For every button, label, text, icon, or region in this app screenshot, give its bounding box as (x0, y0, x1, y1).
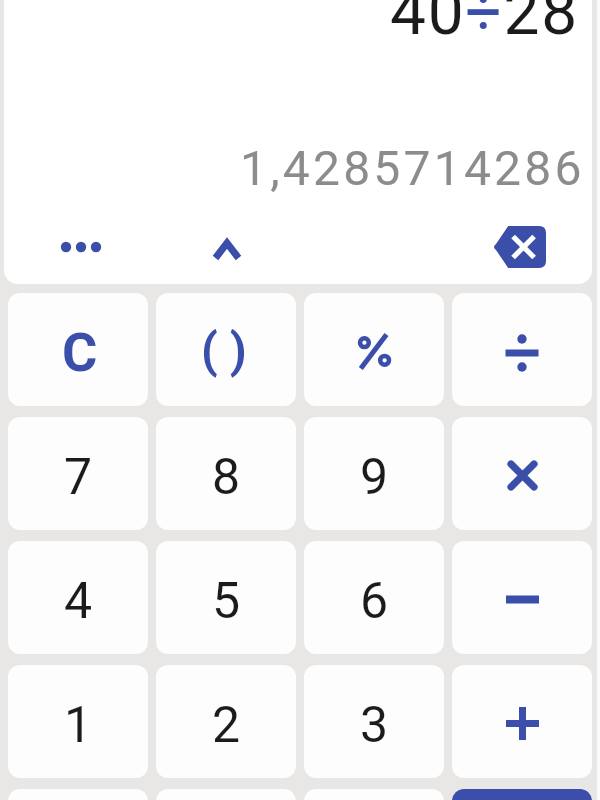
button[interactable] (304, 789, 444, 800)
button[interactable] (8, 789, 148, 800)
button[interactable] (192, 220, 262, 280)
staticText: 5 (212, 572, 241, 631)
staticText: 1,4285714286 (240, 140, 585, 196)
button[interactable] (452, 665, 592, 778)
staticText: 7 (64, 448, 93, 507)
button[interactable]: 1 (8, 665, 148, 778)
button[interactable]: ( ) (156, 293, 296, 406)
button[interactable] (304, 293, 444, 406)
button[interactable]: 4 (8, 541, 148, 654)
staticText: ( ) (201, 322, 247, 378)
staticText: 40÷28 (390, 0, 579, 50)
button[interactable]: 3 (304, 665, 444, 778)
staticText: 1 (64, 696, 93, 755)
staticText: 8 (212, 448, 241, 507)
button[interactable]: 6 (304, 541, 444, 654)
button[interactable]: 2 (156, 665, 296, 778)
staticText: 6 (360, 572, 389, 631)
button[interactable]: 7 (8, 417, 148, 530)
staticText: 9 (360, 448, 389, 507)
staticText: 2 (212, 696, 241, 755)
button[interactable] (452, 789, 592, 800)
button[interactable] (452, 417, 592, 530)
button[interactable]: 5 (156, 541, 296, 654)
button[interactable] (46, 217, 116, 277)
button[interactable]: C (8, 293, 148, 406)
staticText: C (62, 321, 98, 384)
button[interactable] (452, 541, 592, 654)
button[interactable]: 9 (304, 417, 444, 530)
button[interactable] (156, 789, 296, 800)
staticText: 4 (64, 572, 93, 631)
button[interactable] (474, 217, 564, 277)
button[interactable]: 8 (156, 417, 296, 530)
staticText: 3 (360, 696, 389, 755)
button[interactable] (452, 293, 592, 406)
